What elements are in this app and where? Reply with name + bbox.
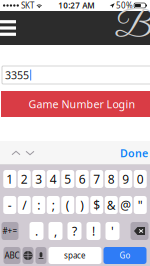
staticText: $: [93, 197, 100, 213]
staticText: ,: [54, 223, 57, 239]
button[interactable]: ': [105, 222, 119, 240]
button[interactable]: &: [105, 196, 118, 214]
staticText: !: [92, 223, 95, 239]
button[interactable]: 6: [76, 170, 89, 188]
button[interactable]: Dictate: [35, 247, 46, 264]
staticText: ;: [52, 197, 55, 213]
button[interactable]: ,: [48, 222, 62, 240]
staticText: ': [111, 223, 114, 239]
button[interactable]: @: [119, 196, 132, 214]
button[interactable]: Delete: [130, 222, 148, 240]
button[interactable]: (: [61, 196, 74, 214]
staticText: 50%: [116, 0, 133, 11]
button[interactable]: 2: [18, 170, 31, 188]
staticText: -: [8, 197, 12, 213]
button[interactable]: Go: [103, 247, 146, 264]
button[interactable]: #+=: [1, 222, 18, 240]
button[interactable]: 8: [105, 170, 118, 188]
staticText: 9: [122, 171, 129, 187]
staticText: SKT: [21, 0, 34, 11]
button[interactable]: 5: [61, 170, 74, 188]
staticText: ": [138, 197, 143, 213]
staticText: &: [107, 197, 116, 213]
button[interactable]: 3: [32, 170, 45, 188]
button[interactable]: ?: [67, 222, 81, 240]
staticText: 0: [137, 171, 144, 187]
button[interactable]: -: [3, 196, 16, 214]
button[interactable]: Menu: [0, 11, 16, 45]
staticText: 6: [79, 171, 86, 187]
button[interactable]: 7: [90, 170, 103, 188]
staticText: B: [115, 6, 150, 50]
button[interactable]: Next field: [23, 141, 37, 165]
staticText: @: [120, 197, 131, 213]
button[interactable]: ": [134, 196, 147, 214]
button[interactable]: Home: [120, 11, 146, 45]
staticText: 7: [93, 171, 100, 187]
button[interactable]: ABC: [3, 247, 20, 264]
button[interactable]: .: [29, 222, 43, 240]
staticText: :: [37, 197, 40, 213]
staticText: 2: [21, 171, 28, 187]
button[interactable]: !: [86, 222, 100, 240]
button[interactable]: 0: [134, 170, 147, 188]
button[interactable]: ): [76, 196, 89, 214]
button[interactable]: Done: [120, 141, 148, 165]
staticText: .: [35, 223, 38, 239]
staticText: 8: [108, 171, 115, 187]
staticText: (: [66, 197, 70, 213]
button[interactable]: ;: [47, 196, 60, 214]
staticText: /: [22, 197, 26, 213]
staticText: ): [80, 197, 84, 213]
button[interactable]: 4: [47, 170, 60, 188]
staticText: 1: [6, 171, 13, 187]
button[interactable]: 9: [119, 170, 132, 188]
staticText: #+=: [2, 226, 17, 236]
staticText: Done: [120, 146, 148, 160]
button[interactable]: Game Number Login: [1, 91, 150, 117]
button[interactable]: space: [48, 247, 101, 264]
staticText: ?: [72, 223, 77, 239]
staticText: 3355: [5, 68, 29, 82]
staticText: 3: [35, 171, 42, 187]
button[interactable]: Previous field: [9, 141, 23, 165]
staticText: Go: [119, 250, 130, 261]
staticText: space: [64, 250, 86, 261]
button[interactable]: Next keyboard: [22, 247, 33, 264]
button[interactable]: 1: [3, 170, 16, 188]
staticText: 4: [50, 171, 57, 187]
staticText: ABC: [4, 250, 19, 261]
button[interactable]: /: [18, 196, 31, 214]
staticText: 10:27 AM: [58, 0, 94, 11]
staticText: Game Number Login: [28, 97, 135, 111]
button[interactable]: :: [32, 196, 45, 214]
button[interactable]: $: [90, 196, 103, 214]
staticText: 5: [64, 171, 71, 187]
